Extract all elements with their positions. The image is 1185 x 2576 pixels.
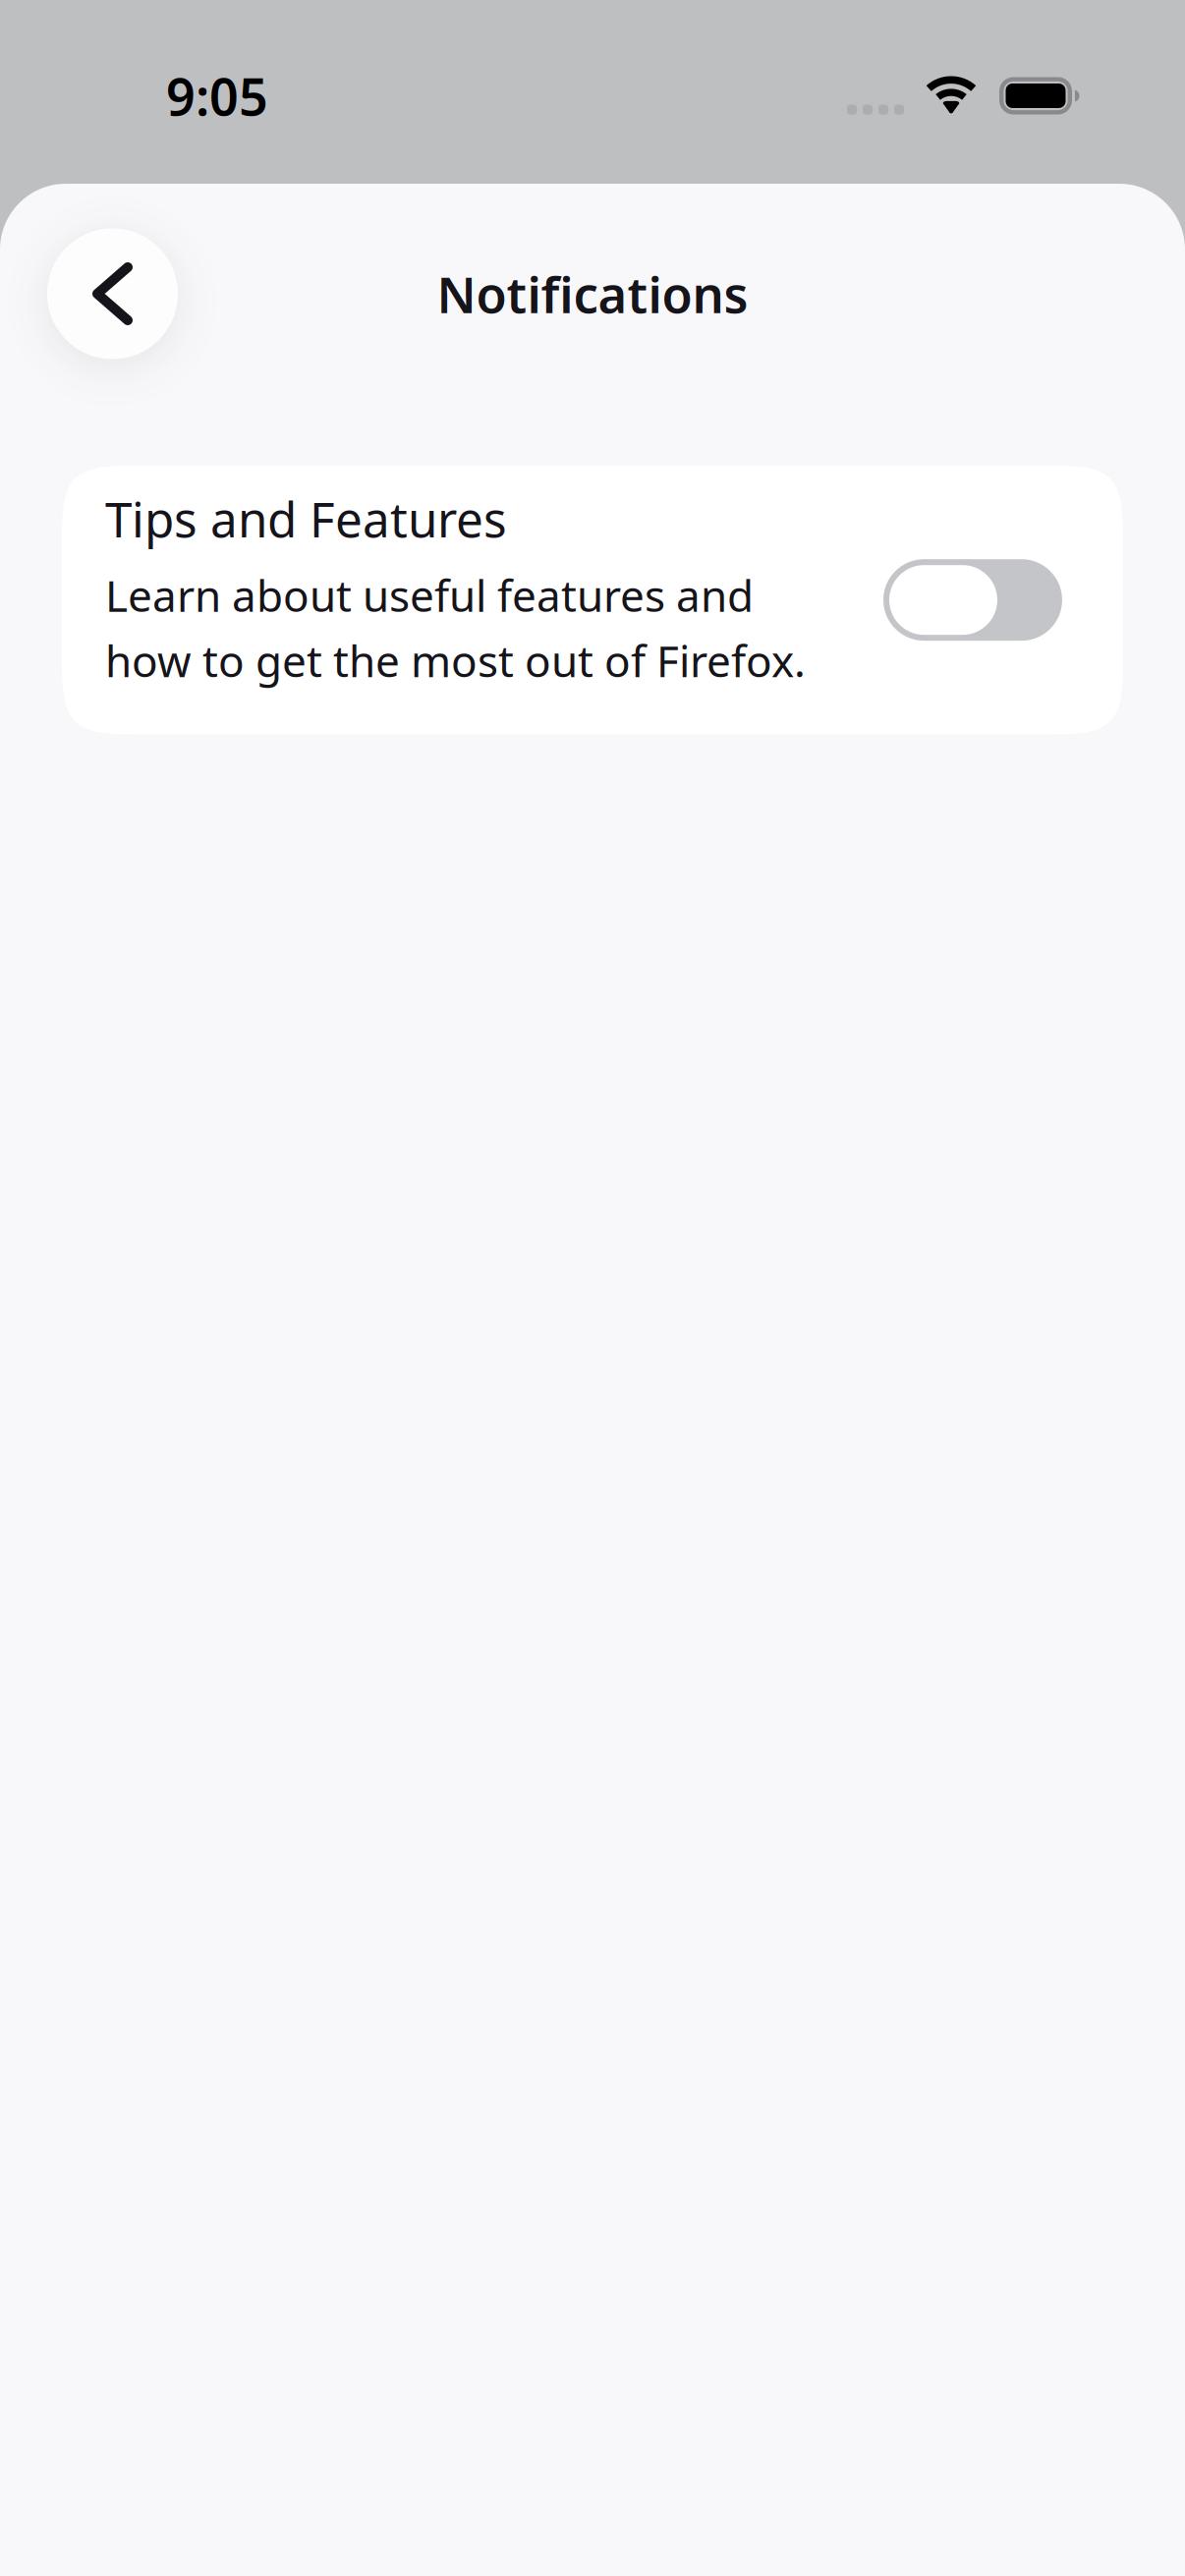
staticText: how to get the most out of Firefox. bbox=[105, 632, 806, 689]
staticText: 9:05 bbox=[166, 62, 268, 130]
button[interactable]: Tips and Features bbox=[62, 466, 1123, 734]
button[interactable]: Back bbox=[47, 228, 178, 359]
button[interactable]: Tips and Features bbox=[883, 535, 1062, 641]
staticText: Notifications bbox=[437, 261, 748, 327]
staticText: Tips and Features bbox=[105, 486, 507, 551]
staticText: Learn about useful features and bbox=[105, 566, 754, 624]
